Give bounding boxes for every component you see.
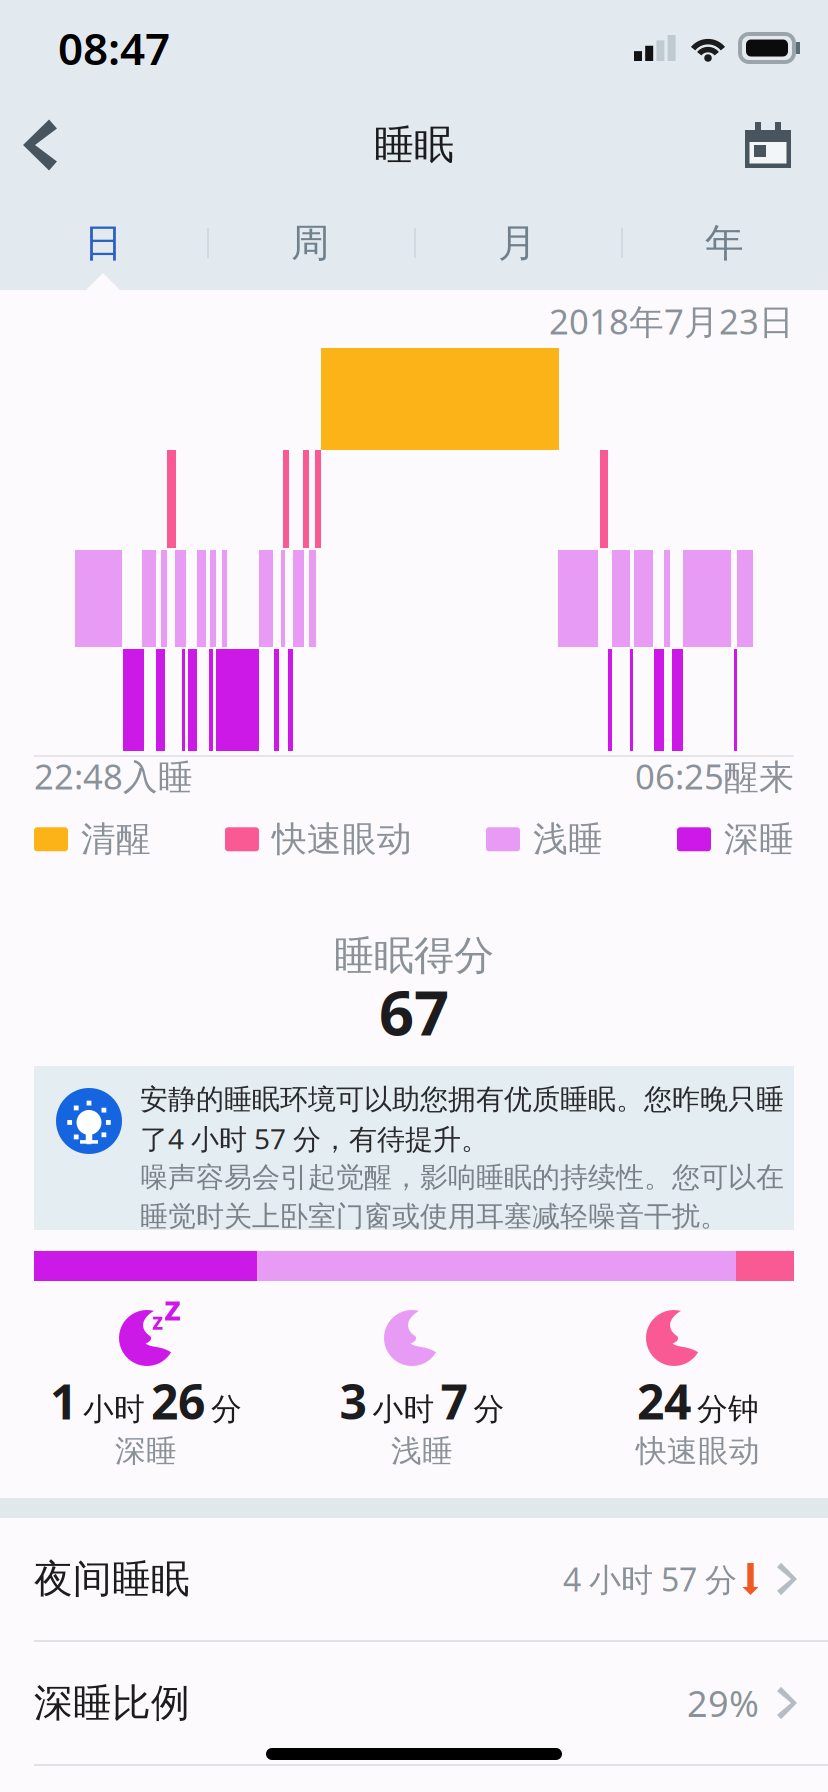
staticText: 小时 bbox=[83, 1391, 145, 1428]
staticText: 深睡比例 bbox=[34, 1679, 190, 1727]
staticText: 深睡 bbox=[115, 1432, 177, 1470]
staticText: 睡觉时关上卧室门窗或使用耳塞减轻噪音干扰。 bbox=[140, 1199, 728, 1234]
staticText: 小时 bbox=[372, 1391, 434, 1428]
button[interactable]: 月 bbox=[414, 198, 621, 288]
staticText: 24 bbox=[637, 1369, 691, 1433]
staticText: 快速眼动 bbox=[272, 818, 412, 861]
staticText: 浅睡 bbox=[533, 818, 603, 861]
staticText: 22:48入睡 bbox=[34, 753, 193, 799]
staticText: z bbox=[164, 1284, 181, 1330]
staticText: 睡眠得分 bbox=[334, 931, 494, 980]
staticText: 月 bbox=[498, 219, 537, 267]
button[interactable]: 返回 bbox=[0, 100, 82, 190]
button[interactable]: 夜间睡眠 bbox=[0, 1518, 828, 1640]
staticText: 周 bbox=[291, 219, 330, 267]
staticText: 1 bbox=[50, 1369, 77, 1433]
button[interactable]: 周 bbox=[207, 198, 414, 288]
staticText: 2018年7月23日 bbox=[549, 298, 794, 344]
staticText: 了4 小时 57 分，有待提升。 bbox=[140, 1120, 489, 1157]
staticText: 3 bbox=[339, 1369, 366, 1433]
staticText: 噪声容易会引起觉醒，影响睡眠的持续性。您可以在 bbox=[140, 1160, 784, 1195]
staticText: 06:25醒来 bbox=[635, 753, 794, 799]
staticText: 睡眠 bbox=[374, 120, 454, 169]
staticText: 4 小时 57 分 bbox=[563, 1558, 737, 1600]
staticText: 67 bbox=[379, 971, 449, 1052]
staticText: 快速眼动 bbox=[636, 1432, 760, 1470]
button[interactable]: 年 bbox=[621, 198, 828, 288]
button[interactable]: 日历 bbox=[708, 100, 828, 190]
button[interactable]: 日 bbox=[0, 198, 207, 288]
staticText: 浅睡 bbox=[391, 1432, 453, 1470]
staticText: 7 bbox=[440, 1369, 467, 1433]
staticText: 年 bbox=[705, 219, 744, 267]
staticText: 分 bbox=[211, 1391, 242, 1428]
staticText: z bbox=[152, 1306, 163, 1336]
staticText: 日 bbox=[84, 219, 123, 267]
button[interactable]: 深睡比例 bbox=[0, 1642, 828, 1764]
staticText: 29% bbox=[687, 1679, 759, 1727]
staticText: 清醒 bbox=[81, 818, 151, 861]
staticText: 26 bbox=[151, 1369, 205, 1433]
staticText: 分钟 bbox=[697, 1391, 759, 1428]
staticText: 安静的睡眠环境可以助您拥有优质睡眠。您昨晚只睡 bbox=[140, 1082, 784, 1117]
staticText: 深睡 bbox=[724, 818, 794, 861]
staticText: 分 bbox=[473, 1391, 504, 1428]
staticText: 夜间睡眠 bbox=[34, 1555, 190, 1603]
staticText: 08:47 bbox=[58, 19, 170, 77]
